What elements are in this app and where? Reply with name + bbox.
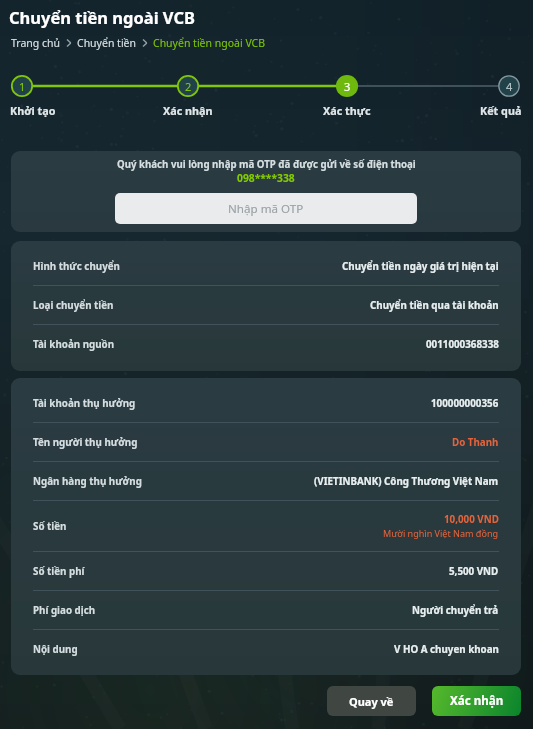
- button[interactable]: Phí giao dịch: [33, 591, 499, 629]
- staticText: Phí giao dịch: [33, 604, 96, 617]
- staticText: 4: [506, 79, 513, 94]
- staticText: 3: [344, 79, 351, 94]
- button[interactable]: Kết quả: [497, 74, 521, 98]
- staticText: Tài khoản thụ hưởng: [33, 397, 136, 410]
- staticText: 0011000368338: [426, 338, 499, 351]
- staticText: Quay về: [349, 694, 394, 709]
- staticText: Tên người thụ hưởng: [33, 436, 138, 449]
- button[interactable]: Nhập mã OTP: [115, 193, 417, 224]
- staticText: Quý khách vui lòng nhập mã OTP đã được g…: [117, 158, 416, 171]
- staticText: Kết quả: [480, 103, 522, 118]
- staticText: Tài khoản nguồn: [33, 338, 115, 351]
- staticText: Người chuyển trả: [412, 604, 499, 617]
- staticText: Chuyển tiền ngày giá trị hiện tại: [342, 260, 499, 273]
- staticText: Xác nhận: [163, 103, 213, 118]
- button[interactable]: Trang chủ: [11, 36, 61, 50]
- button[interactable]: Tài khoản thụ hưởng: [33, 384, 499, 422]
- staticText: Số tiền phí: [33, 565, 85, 578]
- staticText: Chuyển tiền: [77, 36, 137, 50]
- button[interactable]: Ngân hàng thụ hưởng: [33, 462, 499, 500]
- staticText: Xác nhận: [450, 693, 504, 709]
- staticText: Trang chủ: [11, 36, 61, 50]
- staticText: 10,000 VND: [444, 513, 499, 526]
- staticText: 100000000356: [431, 397, 499, 410]
- staticText: 098****338: [237, 171, 295, 185]
- button[interactable]: Xác thực: [335, 74, 359, 98]
- staticText: V HO A chuyen khoan: [394, 643, 499, 656]
- button[interactable]: Quay về: [327, 686, 416, 716]
- button[interactable]: Loại chuyển tiền: [33, 286, 499, 324]
- staticText: Chuyển tiền ngoài VCB: [153, 36, 266, 50]
- staticText: Hình thức chuyển: [33, 260, 120, 273]
- staticText: 1: [19, 79, 26, 94]
- staticText: Khởi tạo: [10, 103, 56, 118]
- button[interactable]: Khởi tạo: [10, 74, 34, 98]
- button[interactable]: Xác nhận: [432, 686, 521, 716]
- button[interactable]: Tài khoản nguồn: [33, 325, 499, 363]
- staticText: Ngân hàng thụ hưởng: [33, 475, 142, 488]
- staticText: Loại chuyển tiền: [33, 299, 114, 312]
- staticText: 5,500 VND: [449, 565, 499, 578]
- button[interactable]: Số tiền phí: [33, 552, 499, 590]
- staticText: 2: [185, 79, 192, 94]
- button[interactable]: Xác nhận: [176, 74, 200, 98]
- button[interactable]: Nội dung: [33, 630, 499, 668]
- staticText: Mười nghìn Việt Nam đồng: [383, 527, 499, 539]
- staticText: Xác thực: [323, 103, 371, 118]
- button[interactable]: Số tiền: [33, 501, 499, 551]
- staticText: (VIETINBANK) Công Thương Việt Nam: [314, 475, 499, 488]
- button[interactable]: Hình thức chuyển: [33, 247, 499, 285]
- staticText: Do Thanh: [452, 436, 499, 449]
- staticText: Nội dung: [33, 643, 78, 656]
- staticText: Nhập mã OTP: [228, 201, 304, 217]
- staticText: Chuyển tiền qua tài khoản: [370, 299, 499, 312]
- staticText: Chuyển tiền ngoài VCB: [9, 6, 195, 28]
- staticText: Số tiền: [33, 520, 67, 533]
- button[interactable]: Tên người thụ hưởng: [33, 423, 499, 461]
- button[interactable]: Chuyển tiền: [77, 36, 137, 50]
